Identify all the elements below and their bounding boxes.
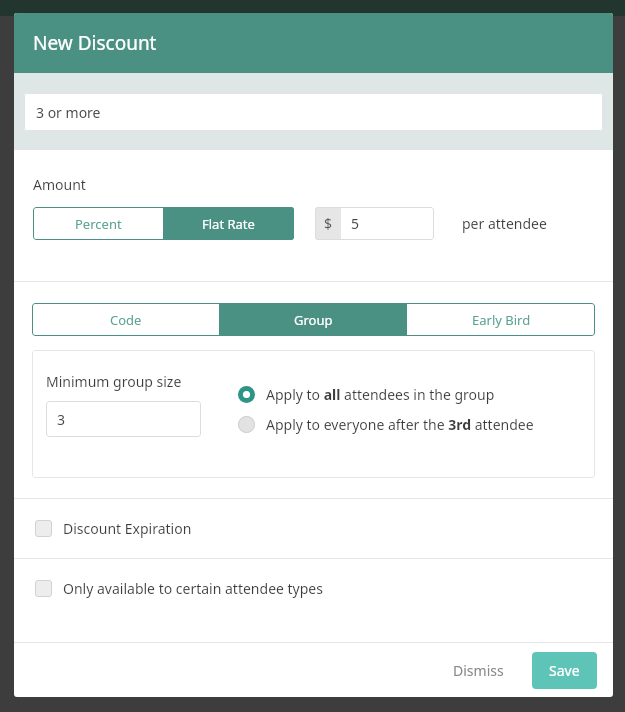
staticText: Minimum group size (46, 372, 182, 391)
button[interactable]: Dismiss (439, 652, 518, 689)
button[interactable]: Flat Rate (163, 207, 294, 240)
staticText: Apply to everyone after the 3rd attendee (266, 415, 534, 434)
staticText: per attendee (462, 214, 547, 233)
button[interactable]: Discount Expiration (14, 499, 613, 558)
staticText: 3 or more (36, 103, 101, 122)
button[interactable]: Save (532, 652, 597, 689)
staticText: Apply to all attendees in the group (266, 385, 495, 404)
staticText: Flat Rate (202, 215, 255, 233)
button[interactable]: Apply to everyone after the 3rd attendee (238, 413, 534, 436)
staticText: Amount (33, 175, 86, 194)
button[interactable]: Early Bird (407, 303, 595, 336)
button[interactable]: Code (32, 303, 219, 336)
button[interactable]: Group (219, 303, 407, 336)
staticText: New Discount (33, 30, 157, 56)
button[interactable]: 3 or more (24, 93, 603, 131)
button[interactable]: $ (315, 207, 434, 240)
button[interactable]: Only available to certain attendee types (14, 559, 613, 618)
staticText: Discount Expiration (63, 519, 192, 538)
staticText: Early Bird (472, 311, 531, 329)
button[interactable]: 3 (46, 401, 201, 437)
staticText: $ (324, 214, 333, 233)
button[interactable]: Apply to all attendees in the group (238, 383, 495, 406)
staticText: Code (110, 311, 142, 329)
staticText: Percent (75, 215, 122, 233)
button[interactable]: Percent (33, 207, 163, 240)
staticText: Only available to certain attendee types (63, 579, 323, 598)
staticText: 3 (57, 410, 66, 429)
staticText: Dismiss (453, 661, 504, 680)
staticText: Group (294, 311, 333, 329)
staticText: Save (549, 661, 580, 680)
staticText: 5 (351, 214, 360, 233)
